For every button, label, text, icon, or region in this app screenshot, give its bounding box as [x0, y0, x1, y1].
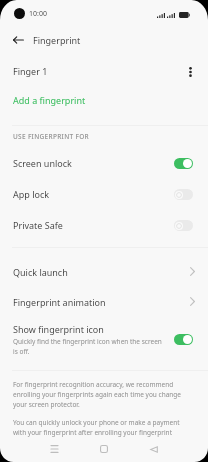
staticText: Finger 1 [13, 65, 48, 77]
button[interactable]: Add a fingerprint [0, 88, 208, 114]
staticText: 10:00 [29, 9, 47, 19]
staticText: USE FINGERPRINT FOR [13, 132, 90, 141]
button[interactable]: Off [174, 220, 193, 231]
button[interactable]: Fingerprint animation [0, 289, 208, 319]
button[interactable]: Home [87, 439, 121, 459]
button[interactable]: Quick launch [0, 259, 208, 289]
button[interactable]: Screen unlock [0, 148, 208, 179]
staticText: Add a fingerprint [13, 94, 86, 106]
button[interactable]: App lock [0, 179, 208, 210]
staticText: Screen unlock [13, 157, 72, 169]
staticText: Private Safe [13, 219, 63, 231]
button[interactable]: Recents [37, 439, 71, 459]
staticText: You can quickly unlock your phone or mak… [13, 418, 185, 437]
staticText: For fingerprint recognition accuracy, we… [13, 380, 185, 409]
staticText: App lock [13, 188, 50, 200]
staticText: Quickly find the fingerprint icon when t… [13, 337, 164, 356]
button[interactable]: More options [183, 62, 197, 82]
staticText: Show fingerprint icon [13, 323, 104, 335]
button[interactable]: Finger 1 [0, 59, 208, 85]
staticText: Fingerprint animation [13, 296, 106, 308]
button[interactable]: Back [137, 439, 171, 459]
button[interactable]: Show fingerprint icon [0, 316, 208, 362]
button[interactable]: Back [6, 28, 30, 52]
button[interactable]: Off [174, 189, 193, 200]
staticText: Quick launch [13, 266, 68, 278]
staticText: Fingerprint [33, 34, 81, 46]
button[interactable]: On [174, 158, 193, 169]
button[interactable]: On [174, 334, 193, 345]
button[interactable]: Private Safe [0, 210, 208, 241]
